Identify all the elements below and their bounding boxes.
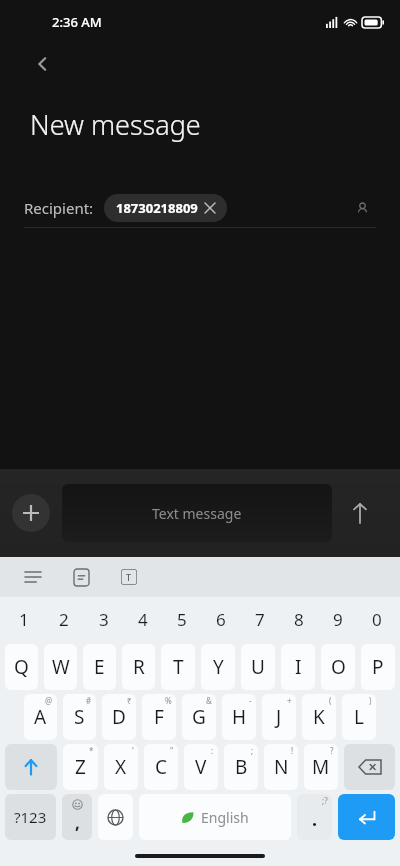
button[interactable]: 9 <box>318 597 357 642</box>
staticText: L <box>354 704 364 730</box>
button[interactable]: 7 <box>240 597 279 642</box>
staticText: R <box>133 654 145 680</box>
button[interactable]: D <box>102 694 136 740</box>
button[interactable]: Comma and emoji <box>62 794 92 840</box>
staticText: C <box>155 754 168 780</box>
staticText: : <box>211 745 214 756</box>
staticText: G <box>192 704 206 730</box>
button[interactable]: L <box>342 694 376 740</box>
button[interactable]: Choose contact <box>348 194 376 222</box>
button[interactable]: H <box>222 694 256 740</box>
button[interactable]: 18730218809 <box>104 194 227 222</box>
button[interactable]: 6 <box>201 597 240 642</box>
staticText: * <box>89 745 94 756</box>
staticText: T <box>126 571 132 583</box>
staticText: Q <box>14 654 29 680</box>
button[interactable]: N <box>264 744 298 790</box>
staticText: % <box>165 695 172 706</box>
button[interactable]: V <box>184 744 218 790</box>
button[interactable]: E <box>83 644 116 690</box>
staticText: 3 <box>99 608 109 631</box>
staticText: 2 <box>59 608 69 631</box>
button[interactable]: U <box>241 644 275 690</box>
button[interactable]: Z <box>63 744 98 790</box>
staticText: ; <box>251 745 254 756</box>
staticText: P <box>372 654 384 680</box>
button[interactable]: Change language <box>98 794 133 840</box>
button[interactable]: 5 <box>162 597 201 642</box>
button[interactable]: 2 <box>44 597 84 642</box>
staticText: . <box>312 807 318 832</box>
button[interactable]: Add attachment <box>12 494 50 532</box>
staticText: X <box>115 754 127 780</box>
button[interactable]: 8 <box>279 597 318 642</box>
staticText: ? <box>330 745 334 756</box>
button[interactable]: T <box>161 644 195 690</box>
button[interactable]: 0 <box>357 597 396 642</box>
button[interactable]: A <box>24 694 57 740</box>
button[interactable]: P <box>361 644 395 690</box>
button[interactable]: Send <box>332 485 388 541</box>
staticText: " <box>170 745 174 756</box>
staticText: I <box>295 654 302 680</box>
staticText: O <box>331 654 346 680</box>
staticText: ) <box>369 695 372 706</box>
button[interactable]: S <box>63 694 96 740</box>
button[interactable]: G <box>182 694 216 740</box>
staticText: F <box>154 704 164 730</box>
staticText: 5 <box>177 608 187 631</box>
button[interactable]: R <box>122 644 155 690</box>
button[interactable]: B <box>224 744 258 790</box>
staticText: U <box>251 654 265 680</box>
staticText: 7 <box>255 608 265 631</box>
button[interactable]: Enter <box>338 794 395 840</box>
button[interactable]: 4 <box>123 597 162 642</box>
staticText: , <box>75 811 80 834</box>
button[interactable]: M <box>304 744 338 790</box>
staticText: ;? <box>322 795 328 806</box>
button[interactable]: K <box>302 694 336 740</box>
staticText: 6 <box>216 608 226 631</box>
staticText: 0 <box>372 608 382 631</box>
staticText: K <box>313 704 325 730</box>
staticText: & <box>206 695 212 706</box>
staticText: Recipient: <box>24 198 94 218</box>
staticText: D <box>112 704 126 730</box>
button[interactable]: C <box>144 744 178 790</box>
button[interactable]: Text message <box>62 484 332 542</box>
button[interactable]: ?123 <box>5 794 56 840</box>
staticText: 4 <box>138 608 148 631</box>
button[interactable]: I <box>281 644 315 690</box>
button[interactable]: Shift <box>5 744 57 790</box>
staticText: E <box>94 654 105 680</box>
button[interactable]: X <box>104 744 138 790</box>
button[interactable]: Space <box>139 794 291 840</box>
button[interactable]: Y <box>201 644 235 690</box>
staticText: # <box>86 695 92 706</box>
button[interactable]: F <box>142 694 176 740</box>
button[interactable]: 1 <box>4 597 44 642</box>
staticText: ! <box>291 745 294 756</box>
button[interactable]: Backspace <box>344 744 395 790</box>
button[interactable]: J <box>262 694 296 740</box>
button[interactable]: ;? <box>297 794 332 840</box>
button[interactable]: Q <box>5 644 38 690</box>
button[interactable]: Menu <box>20 564 46 590</box>
button[interactable]: W <box>44 644 77 690</box>
staticText: V <box>195 754 207 780</box>
staticText: B <box>235 754 248 780</box>
staticText: - <box>249 695 252 706</box>
button[interactable]: Clipboard <box>68 564 94 590</box>
staticText: + <box>287 695 292 706</box>
staticText: 9 <box>333 608 343 631</box>
button[interactable]: Text edit <box>116 564 142 590</box>
staticText: M <box>312 754 330 780</box>
staticText: ₹ <box>127 695 132 706</box>
button[interactable]: 3 <box>84 597 123 642</box>
staticText: Y <box>213 654 224 680</box>
button[interactable]: O <box>321 644 355 690</box>
staticText: 8 <box>294 608 304 631</box>
button[interactable]: Back <box>34 44 400 84</box>
staticText: N <box>274 754 289 780</box>
staticText: ?123 <box>14 807 47 827</box>
